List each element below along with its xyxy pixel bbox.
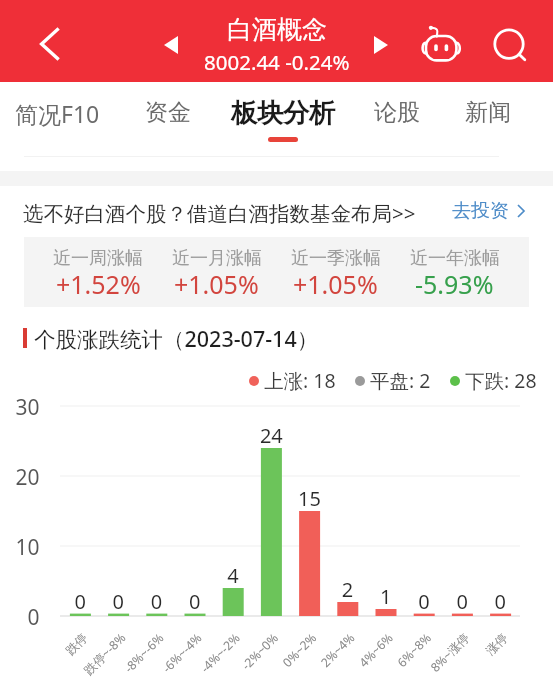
- button[interactable]: Previous: [152, 26, 190, 64]
- staticText: 近一季涨幅: [291, 247, 381, 270]
- staticText: 白酒概念: [227, 14, 327, 45]
- staticText: 板块分析: [231, 97, 335, 130]
- staticText: 平盘: 2: [370, 367, 431, 394]
- staticText: 简况F10: [15, 98, 100, 129]
- staticText: 个股涨跌统计（2023-07-14）: [34, 324, 319, 353]
- staticText: 论股: [374, 98, 420, 127]
- button[interactable]: 论股: [368, 90, 426, 135]
- staticText: 近一周涨幅: [53, 247, 143, 270]
- button[interactable]: 新闻: [459, 90, 517, 135]
- staticText: +1.05%: [174, 267, 259, 301]
- staticText: -5.93%: [415, 267, 494, 301]
- button[interactable]: Back: [26, 21, 72, 67]
- button[interactable]: Assistant: [421, 22, 461, 62]
- staticText: 去投资: [452, 199, 509, 223]
- button[interactable]: 选不好白酒个股？借道白酒指数基金布局>>: [0, 186, 553, 237]
- staticText: 新闻: [465, 98, 511, 127]
- button[interactable]: 资金: [139, 90, 197, 135]
- staticText: +1.05%: [293, 267, 378, 301]
- button[interactable]: Next: [362, 26, 400, 64]
- staticText: 资金: [145, 98, 191, 127]
- staticText: 上涨: 18: [264, 367, 336, 394]
- staticText: 选不好白酒个股？借道白酒指数基金布局>>: [23, 199, 416, 227]
- button[interactable]: Search: [494, 29, 532, 67]
- button[interactable]: 板块分析: [225, 89, 341, 138]
- button[interactable]: 简况F10: [9, 90, 106, 137]
- staticText: 近一年涨幅: [410, 247, 500, 270]
- staticText: 下跌: 28: [465, 367, 537, 394]
- staticText: +1.52%: [56, 267, 141, 301]
- staticText: 8002.44 -0.24%: [204, 48, 350, 76]
- staticText: 近一月涨幅: [172, 247, 262, 270]
